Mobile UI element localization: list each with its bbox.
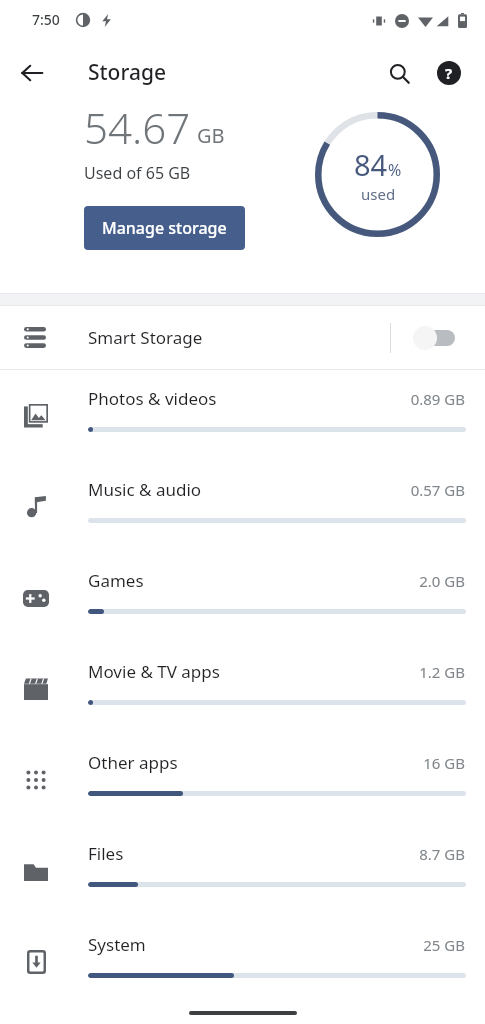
staticText: 0.89 GB <box>410 389 465 409</box>
staticText: Games <box>88 569 144 592</box>
staticText: Photos & videos <box>88 387 217 410</box>
button[interactable]: Help <box>427 51 471 95</box>
staticText: Used of 65 GB <box>84 162 191 184</box>
staticText: 54.67 <box>84 99 191 156</box>
staticText: Music & audio <box>88 478 202 501</box>
staticText: 7:50 <box>32 10 60 29</box>
staticText: Files <box>88 842 124 865</box>
staticText: 8.7 GB <box>419 844 465 864</box>
staticText: 1.2 GB <box>419 662 465 682</box>
button[interactable]: Smart Storage toggle <box>411 316 467 360</box>
staticText: % <box>388 159 402 181</box>
staticText: 84 <box>354 145 388 184</box>
staticText: used <box>361 184 396 204</box>
staticText: Movie & TV apps <box>88 660 220 683</box>
button[interactable]: System <box>0 916 485 1007</box>
button[interactable]: Photos & videos <box>0 370 485 461</box>
staticText: Storage <box>88 58 166 87</box>
staticText: Manage storage <box>102 217 227 239</box>
staticText: ? <box>445 63 453 83</box>
button[interactable]: Back <box>8 49 56 97</box>
button[interactable]: Movie & TV apps <box>0 643 485 734</box>
button[interactable]: Manage storage <box>84 206 245 250</box>
staticText: Smart Storage <box>88 326 203 349</box>
staticText: 25 GB <box>423 935 465 955</box>
button[interactable]: Smart Storage <box>0 306 485 369</box>
button[interactable]: Games <box>0 552 485 643</box>
staticText: 16 GB <box>423 753 465 773</box>
staticText: GB <box>197 122 225 149</box>
button[interactable]: Music & audio <box>0 461 485 552</box>
staticText: System <box>88 933 146 956</box>
staticText: Other apps <box>88 751 178 774</box>
button[interactable]: Files <box>0 825 485 916</box>
button[interactable]: Other apps <box>0 734 485 825</box>
staticText: 2.0 GB <box>419 571 465 591</box>
staticText: 0.57 GB <box>410 480 465 500</box>
button[interactable]: Search <box>377 51 421 95</box>
